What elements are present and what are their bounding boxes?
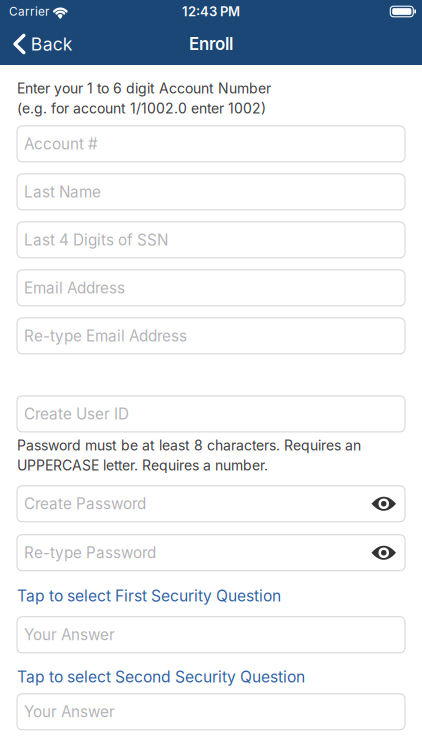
staticText: Email Address: [24, 279, 125, 297]
staticText: Create User ID: [24, 405, 129, 423]
staticText: Re-type Password: [24, 544, 156, 562]
staticText: Create Password: [24, 495, 146, 513]
staticText: Enter your 1 to 6 digit Account Number: [17, 80, 271, 97]
staticText: Carrier: [9, 4, 49, 19]
staticText: Re-type Email Address: [24, 327, 187, 345]
button[interactable]: Show password: [365, 495, 396, 512]
staticText: Your Answer: [24, 626, 115, 644]
staticText: Last Name: [24, 183, 101, 201]
staticText: Account #: [24, 135, 98, 153]
button[interactable]: Tap to select First Security Question: [17, 585, 405, 607]
staticText: 12:43 PM: [182, 4, 240, 19]
button[interactable]: Show password: [365, 544, 396, 561]
button[interactable]: Tap to select Second Security Question: [17, 666, 405, 688]
staticText: Your Answer: [24, 703, 115, 721]
staticText: (e.g. for account 1/1002.0 enter 1002): [17, 100, 266, 117]
button[interactable]: Back: [0, 23, 83, 65]
staticText: Enroll: [189, 34, 233, 54]
staticText: Password must be at least 8 characters. …: [17, 437, 361, 454]
staticText: Tap to select First Security Question: [17, 586, 281, 605]
staticText: Last 4 Digits of SSN: [24, 231, 168, 249]
staticText: Tap to select Second Security Question: [17, 667, 305, 686]
staticText: UPPERCASE letter. Requires a number.: [17, 457, 268, 474]
staticText: Back: [31, 33, 73, 55]
